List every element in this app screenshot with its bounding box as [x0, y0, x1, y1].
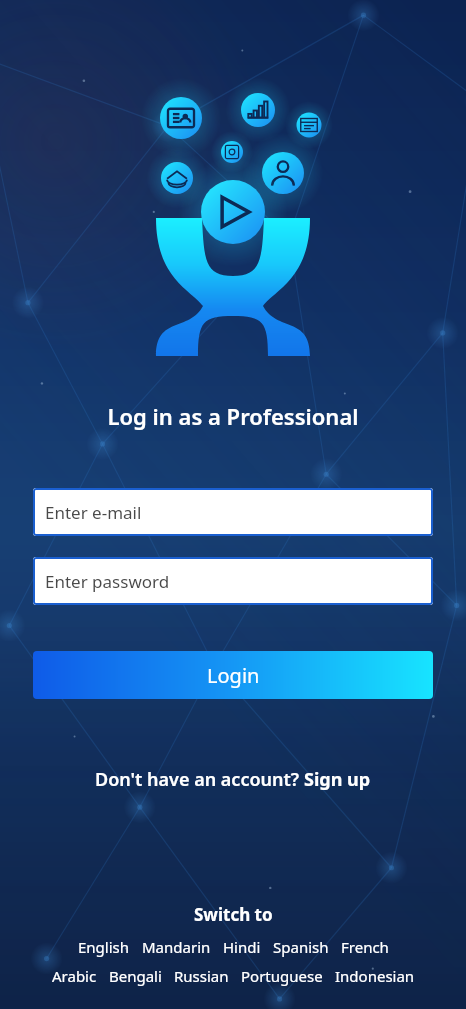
button[interactable]: Arabic — [46, 965, 103, 987]
button[interactable]: French — [335, 936, 395, 958]
button[interactable]: Portuguese — [235, 965, 329, 987]
staticText: Portuguese — [241, 966, 323, 986]
staticText: Arabic — [52, 966, 97, 986]
staticText: Russian — [174, 966, 229, 986]
staticText: Log in as a Professional — [0, 401, 466, 431]
staticText: Indonesian — [335, 966, 415, 986]
button[interactable]: Enter e-mail — [33, 488, 433, 536]
button[interactable]: Indonesian — [329, 965, 421, 987]
staticText: Sign up — [304, 767, 371, 792]
button[interactable]: Mandarin — [136, 936, 217, 958]
button[interactable]: Bengali — [103, 965, 168, 987]
staticText: Mandarin — [142, 937, 211, 957]
staticText: Hindi — [223, 937, 261, 957]
staticText: Enter password — [45, 570, 170, 593]
staticText: Login — [207, 662, 260, 689]
staticText: Bengali — [109, 966, 162, 986]
button[interactable]: Don't have an account? — [0, 767, 466, 792]
staticText: Don't have an account? — [95, 767, 304, 792]
staticText: Enter e-mail — [45, 501, 142, 524]
staticText: Switch to — [194, 903, 273, 926]
staticText: English — [78, 937, 130, 957]
other: App logo — [0, 0, 466, 370]
button[interactable]: Russian — [168, 965, 235, 987]
button[interactable]: Enter password — [33, 557, 433, 605]
staticText: Spanish — [273, 937, 329, 957]
button[interactable]: English — [72, 936, 136, 958]
button[interactable]: Spanish — [267, 936, 335, 958]
staticText: French — [341, 937, 389, 957]
button[interactable]: Hindi — [217, 936, 267, 958]
button[interactable]: Login — [33, 651, 433, 699]
